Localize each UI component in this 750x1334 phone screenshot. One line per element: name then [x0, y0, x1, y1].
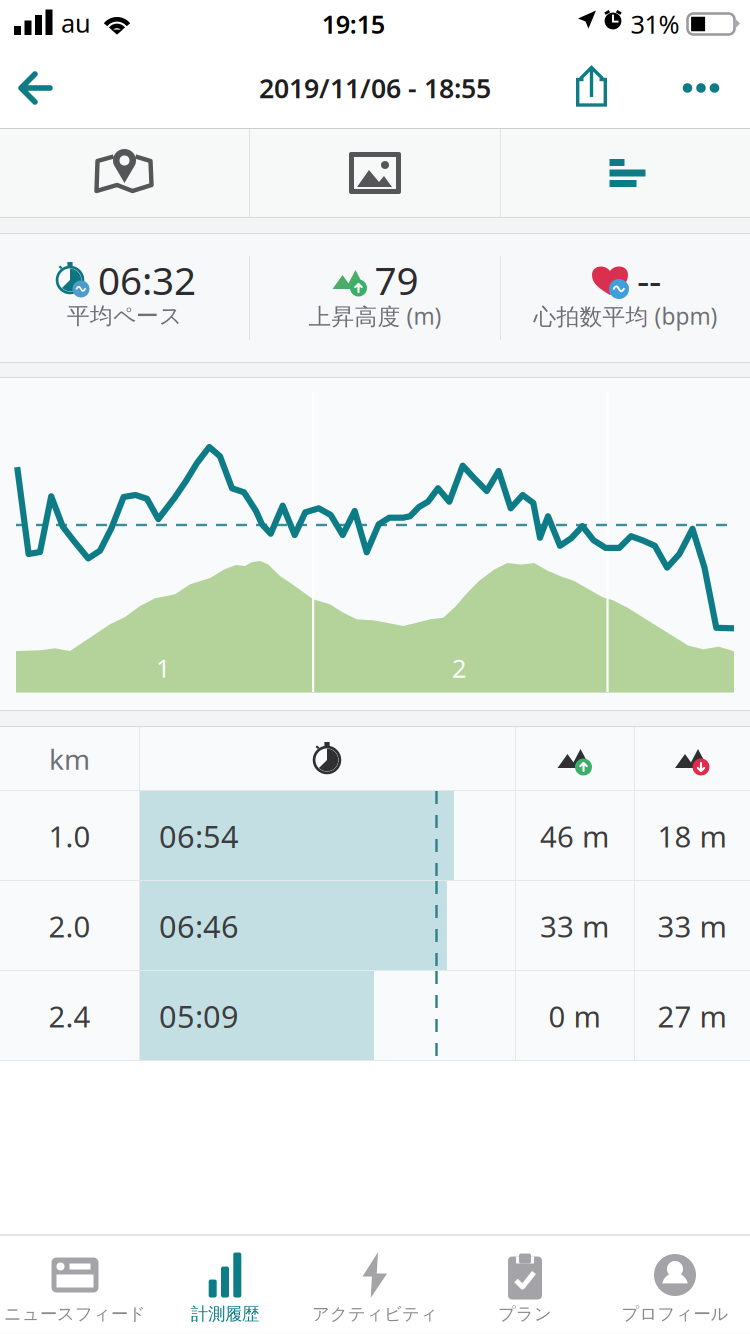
staticText: km [49, 740, 90, 778]
button[interactable]: Share [562, 55, 621, 121]
staticText: 06:54 [159, 816, 239, 856]
button[interactable]: ニュースフィード [0, 1252, 150, 1334]
button[interactable]: プラン [450, 1252, 600, 1334]
staticText: 79 [374, 254, 418, 306]
button[interactable]: プロフィール [600, 1252, 750, 1334]
button[interactable]: Splits [501, 129, 750, 217]
button[interactable]: 計測履歴 [150, 1252, 300, 1334]
button[interactable]: Back [0, 55, 72, 121]
staticText: 05:09 [159, 996, 239, 1036]
button[interactable]: アクティビティ [300, 1252, 450, 1334]
staticText: 2.4 [48, 996, 90, 1035]
staticText: 19:15 [322, 7, 385, 41]
staticText: 心拍数平均 (bpm) [533, 301, 717, 331]
staticText: プラン [498, 1303, 552, 1325]
staticText: 2 [452, 651, 466, 685]
staticText: 平均ペース [67, 302, 182, 330]
staticText: 33 m [540, 906, 609, 945]
staticText: 27 m [657, 996, 726, 1035]
button[interactable]: Map [0, 129, 249, 217]
staticText: 46 m [540, 816, 609, 855]
staticText: 31% [630, 7, 679, 41]
staticText: ニュースフィード [4, 1303, 146, 1325]
staticText: 06:46 [159, 906, 239, 946]
staticText: 06:32 [98, 254, 196, 306]
staticText: プロフィール [621, 1303, 728, 1325]
staticText: -- [637, 254, 661, 306]
staticText: au [61, 6, 91, 40]
button[interactable]: Photos [250, 129, 500, 217]
staticText: 計測履歴 [191, 1303, 259, 1325]
staticText: 1 [156, 651, 170, 685]
staticText: 2.0 [48, 906, 90, 945]
staticText: 18 m [657, 816, 726, 855]
staticText: 33 m [657, 906, 726, 945]
staticText: 0 m [548, 996, 600, 1035]
staticText: 1.0 [48, 816, 90, 855]
staticText: 2019/11/06 - 18:55 [259, 70, 491, 106]
staticText: 上昇高度 (m) [308, 301, 441, 331]
staticText: アクティビティ [312, 1303, 438, 1325]
button[interactable]: More [665, 55, 737, 121]
